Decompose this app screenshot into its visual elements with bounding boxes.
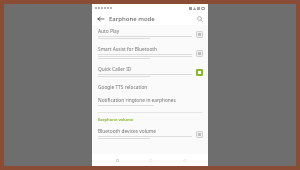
button[interactable]: Auto Play xyxy=(92,25,208,43)
button[interactable]: Quick Caller ID enabled xyxy=(196,69,203,76)
button[interactable]: Home xyxy=(141,155,159,165)
button[interactable]: Toggle setting xyxy=(196,31,203,38)
staticText: Earphone mode xyxy=(109,15,195,23)
button[interactable]: Search xyxy=(195,14,204,23)
staticText: Smart Assist for Bluetooth xyxy=(98,46,157,53)
button[interactable]: Toggle setting xyxy=(196,50,203,57)
staticText: Earphone volume xyxy=(98,117,134,123)
button[interactable]: Notification ringtone in earphones xyxy=(92,94,208,110)
button[interactable]: Bluetooth devices volume xyxy=(92,125,208,143)
button[interactable]: Smart Assist for Bluetooth xyxy=(92,43,208,63)
button[interactable]: Back xyxy=(175,155,193,165)
button[interactable]: Recents xyxy=(108,155,126,165)
button[interactable]: Quick Caller ID xyxy=(92,63,208,81)
button[interactable]: Back xyxy=(96,14,105,23)
staticText: Quick Caller ID xyxy=(98,66,132,73)
button[interactable]: Google TTS relocation xyxy=(92,81,208,94)
button[interactable]: Toggle setting xyxy=(196,131,203,138)
staticText: Notification ringtone in earphones xyxy=(98,97,176,104)
staticText: Bluetooth devices volume xyxy=(98,128,157,135)
staticText: Google TTS relocation xyxy=(98,84,148,91)
staticText: Auto Play xyxy=(98,28,120,35)
